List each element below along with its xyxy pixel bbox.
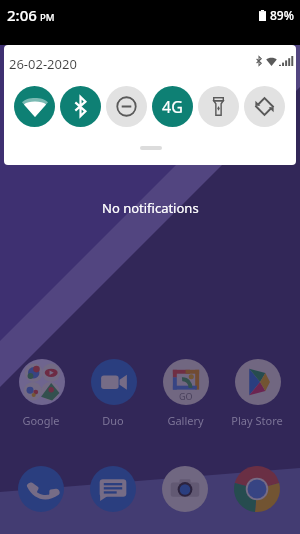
button[interactable]: Camera bbox=[149, 465, 221, 512]
staticText: 26-02-2020 bbox=[9, 55, 77, 73]
button[interactable]: Chrome bbox=[221, 465, 293, 512]
button[interactable]: GO bbox=[149, 358, 221, 428]
button[interactable]: Wi-Fi bbox=[14, 86, 55, 127]
staticText: Gallery bbox=[167, 413, 204, 428]
staticText: No notifications bbox=[102, 199, 199, 217]
staticText: Google bbox=[22, 413, 60, 428]
button[interactable]: Do not disturb bbox=[106, 86, 147, 127]
button[interactable]: Play Store bbox=[221, 358, 293, 428]
staticText: PM bbox=[40, 11, 55, 24]
button[interactable]: Phone bbox=[5, 465, 77, 512]
staticText: 89% bbox=[270, 7, 294, 23]
staticText: Duo bbox=[102, 413, 124, 428]
staticText: 2:06 bbox=[7, 5, 37, 25]
button[interactable]: Messages bbox=[77, 465, 149, 512]
staticText: Play Store bbox=[231, 413, 283, 428]
button[interactable]: 4G bbox=[152, 86, 193, 127]
staticText: 4G bbox=[162, 96, 183, 118]
button[interactable]: Auto rotate bbox=[244, 86, 285, 127]
button[interactable]: Flashlight bbox=[198, 86, 239, 127]
button[interactable]: Google bbox=[5, 358, 77, 428]
button[interactable]: Bluetooth bbox=[60, 86, 101, 127]
staticText: GO bbox=[179, 390, 193, 402]
button[interactable]: Duo bbox=[77, 358, 149, 428]
